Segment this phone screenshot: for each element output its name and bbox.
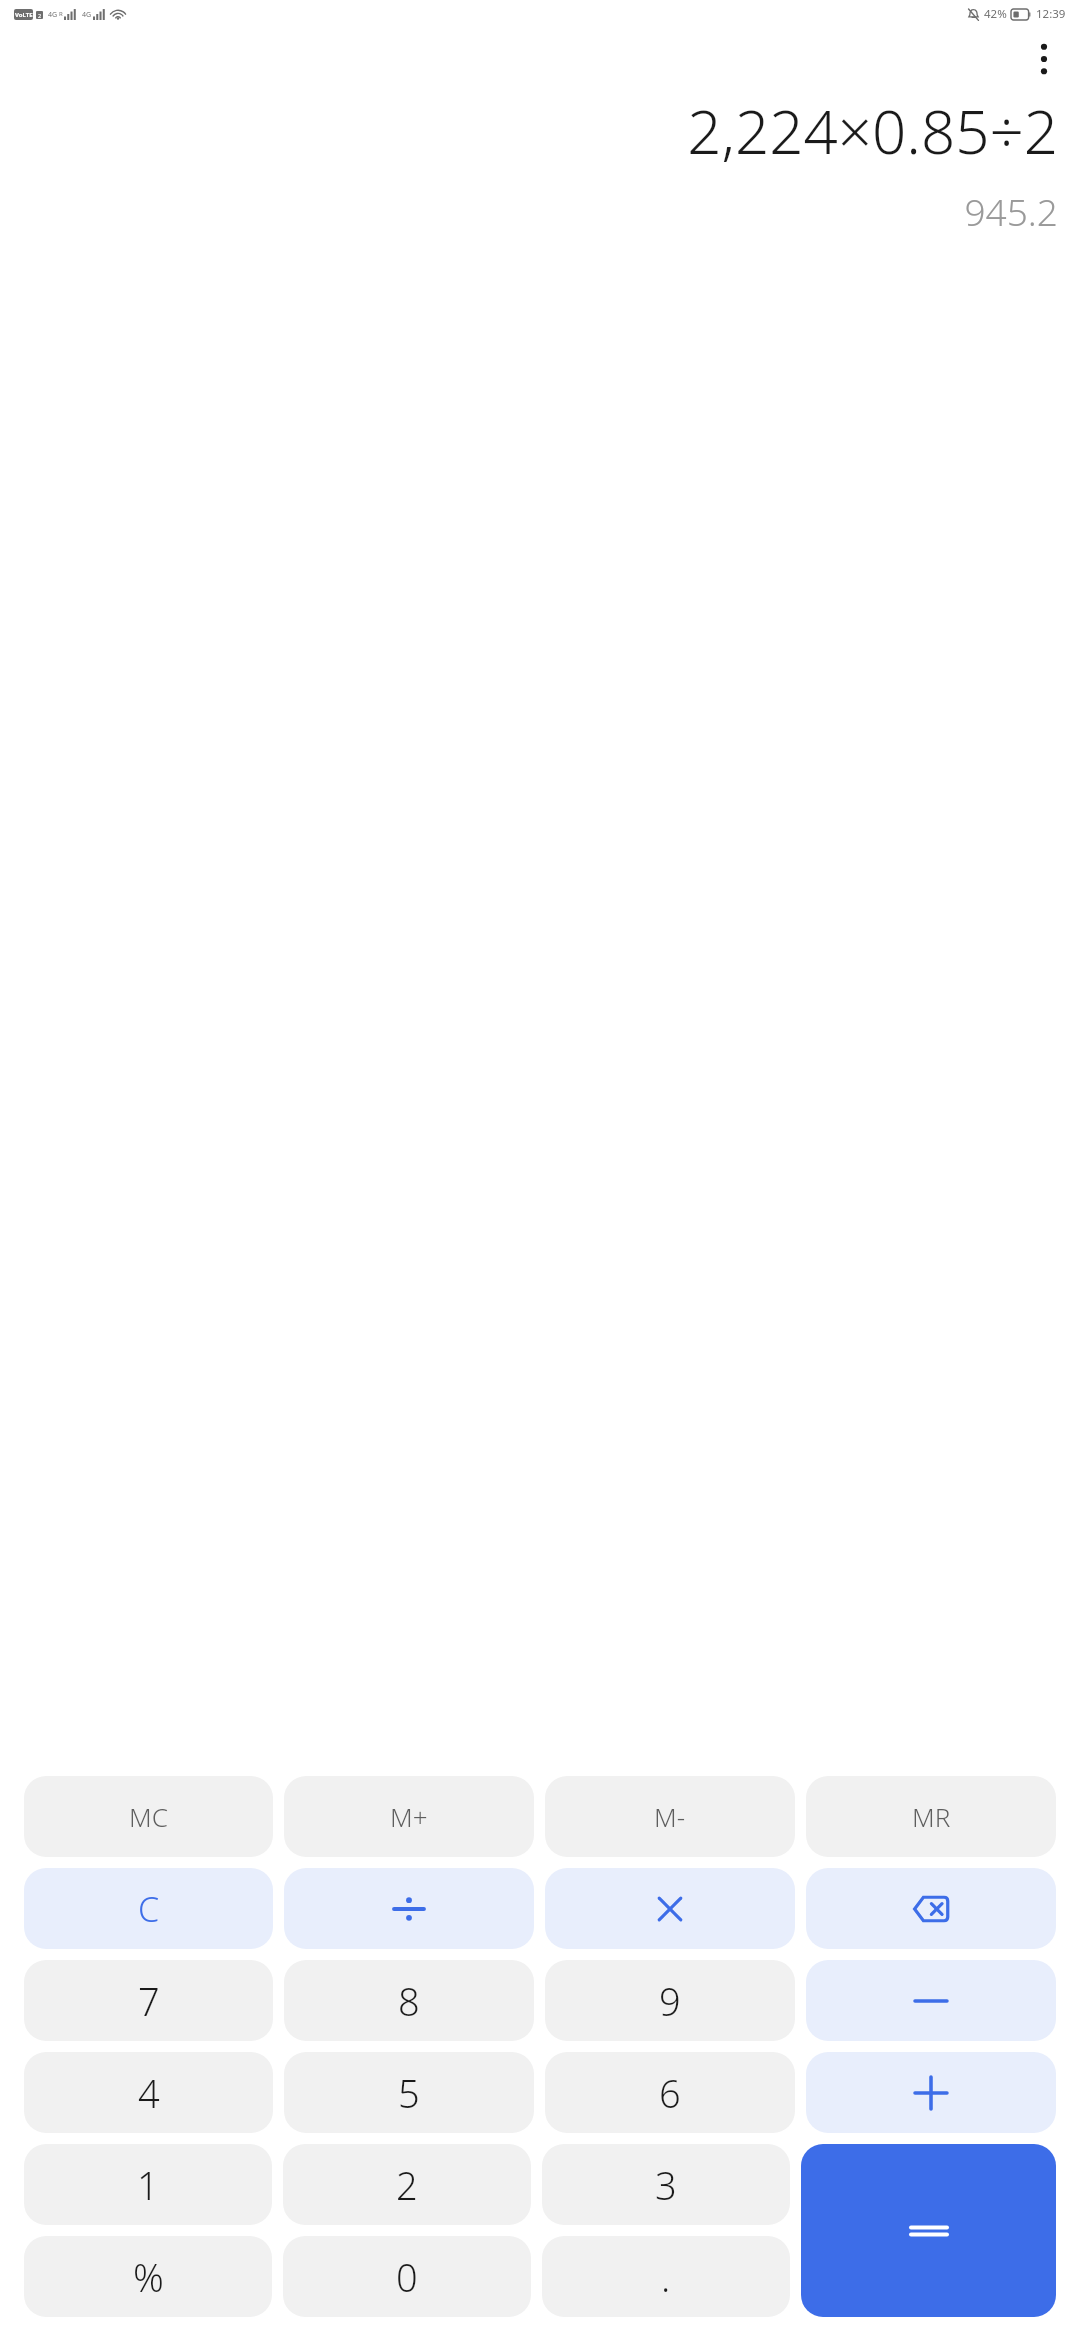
staticText: 4G	[48, 10, 58, 20]
staticText: M-	[654, 1799, 686, 1834]
button[interactable]: 5	[284, 2052, 534, 2133]
staticText: 7	[138, 1975, 160, 2027]
staticText: 945.2	[964, 186, 1058, 236]
staticText: 8	[398, 1975, 420, 2027]
button[interactable]: 0	[283, 2236, 531, 2317]
staticText: 42%	[984, 6, 1007, 22]
staticText: M+	[390, 1799, 428, 1834]
staticText: 1	[137, 2159, 159, 2211]
staticText: .	[661, 2251, 671, 2303]
button[interactable]: Plus	[806, 2052, 1056, 2133]
button[interactable]: Equals	[801, 2144, 1056, 2317]
button[interactable]: 1	[24, 2144, 272, 2225]
button[interactable]: Multiply	[545, 1868, 795, 1949]
button[interactable]: Divide	[284, 1868, 534, 1949]
staticText: MC	[129, 1799, 168, 1834]
button[interactable]: 2	[283, 2144, 531, 2225]
staticText: 2	[38, 12, 42, 19]
staticText: 2	[396, 2159, 418, 2211]
button[interactable]: 7	[24, 1960, 273, 2041]
staticText: 3	[655, 2159, 677, 2211]
button[interactable]: M-	[545, 1776, 795, 1857]
staticText: VoLTE	[15, 11, 33, 19]
button[interactable]: M+	[284, 1776, 534, 1857]
button[interactable]: Minus	[806, 1960, 1056, 2041]
staticText: 6	[659, 2067, 681, 2119]
button[interactable]: Clear	[24, 1868, 273, 1949]
button[interactable]: 8	[284, 1960, 534, 2041]
staticText: 4	[138, 2067, 160, 2119]
staticText: R	[59, 10, 63, 18]
staticText: 4G	[82, 10, 92, 20]
staticText: 2,224×0.85÷2	[687, 90, 1058, 172]
staticText: MR	[912, 1799, 951, 1834]
button[interactable]: 9	[545, 1960, 795, 2041]
button[interactable]: Backspace	[806, 1868, 1056, 1949]
staticText: 5	[398, 2067, 420, 2119]
button[interactable]: MR	[806, 1776, 1056, 1857]
staticText: 0	[396, 2251, 418, 2303]
staticText: 12:39	[1036, 6, 1066, 22]
button[interactable]: MC	[24, 1776, 273, 1857]
button[interactable]: 4	[24, 2052, 273, 2133]
staticText: %	[133, 2251, 164, 2303]
button[interactable]: .	[542, 2236, 790, 2317]
staticText: C	[138, 1886, 160, 1932]
button[interactable]: More options	[1020, 35, 1068, 83]
button[interactable]: 3	[542, 2144, 790, 2225]
button[interactable]: 6	[545, 2052, 795, 2133]
staticText: 9	[659, 1975, 681, 2027]
button[interactable]: %	[24, 2236, 272, 2317]
